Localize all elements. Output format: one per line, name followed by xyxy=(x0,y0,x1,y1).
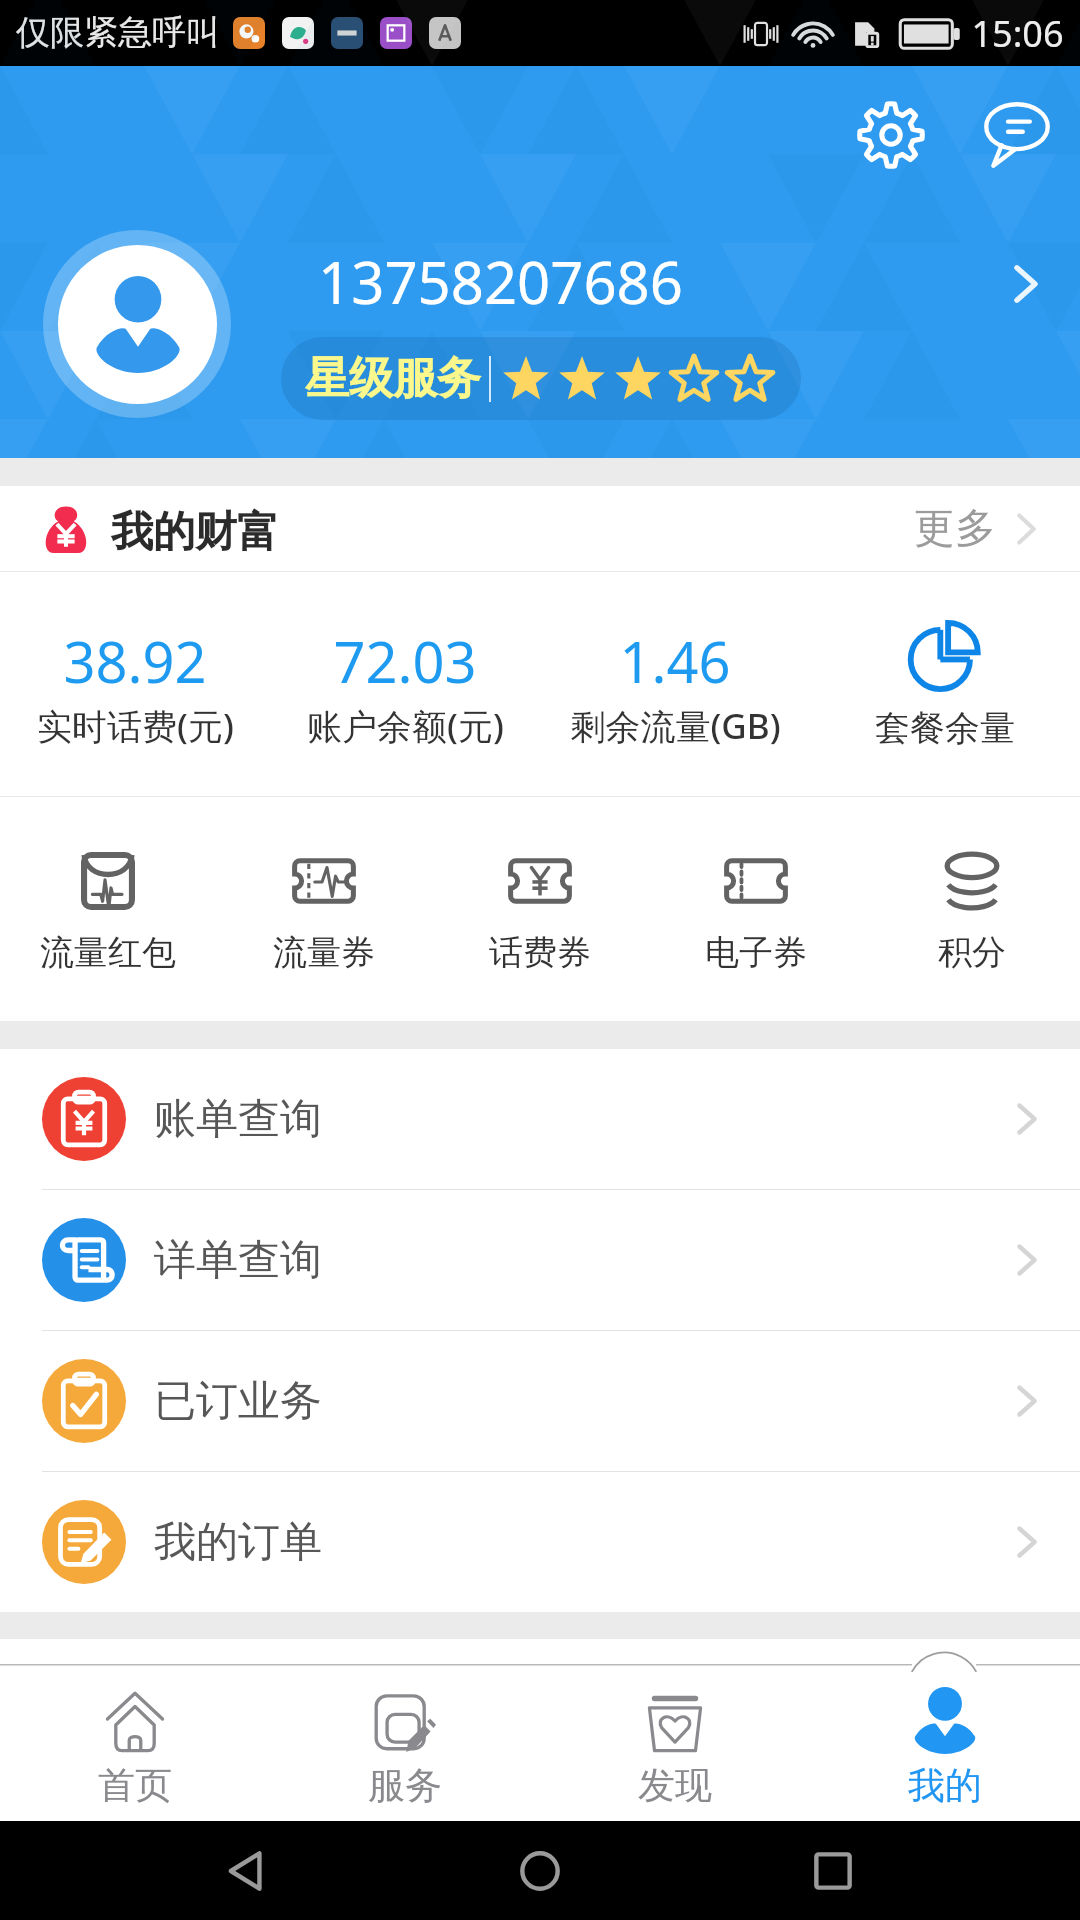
button[interactable]: 电子券 xyxy=(648,797,864,1021)
button[interactable]: 38.92 xyxy=(0,572,270,796)
staticText: 详单查询 xyxy=(154,1234,322,1287)
staticText: 套餐余量 xyxy=(875,706,1015,750)
button[interactable]: 我的财富 xyxy=(0,486,1080,571)
button[interactable]: Home xyxy=(495,1826,585,1916)
staticText: 剩余流量(GB) xyxy=(570,702,781,750)
button[interactable]: 发现 xyxy=(540,1664,810,1821)
button[interactable]: 积分 xyxy=(864,797,1080,1021)
button[interactable]: 1.46 xyxy=(540,572,810,796)
button[interactable]: 详单查询 xyxy=(0,1190,1080,1330)
button[interactable]: Settings xyxy=(836,80,946,190)
staticText: 账户余额(元) xyxy=(307,702,504,750)
staticText: 星级服务 xyxy=(305,351,481,406)
button[interactable]: 我的订单 xyxy=(0,1472,1080,1612)
staticText: 首页 xyxy=(98,1762,172,1809)
staticText: 更多 xyxy=(914,503,996,555)
button[interactable]: 话费券 xyxy=(432,797,648,1021)
staticText: 流量券 xyxy=(273,931,375,974)
staticText: 话费券 xyxy=(489,931,591,974)
staticText: 15:06 xyxy=(971,9,1064,58)
staticText: 我的财富 xyxy=(111,506,279,559)
staticText: 流量红包 xyxy=(40,931,176,974)
button[interactable]: 套餐余量 xyxy=(810,572,1080,796)
staticText: 72.03 xyxy=(333,623,477,699)
button[interactable]: 已订业务 xyxy=(0,1331,1080,1471)
staticText: 服务 xyxy=(368,1762,442,1809)
button[interactable]: 服务 xyxy=(270,1664,540,1821)
button[interactable]: 我的 xyxy=(810,1664,1080,1821)
staticText: 发现 xyxy=(638,1762,712,1809)
staticText: 电子券 xyxy=(705,931,807,974)
staticText: 38.92 xyxy=(63,623,207,699)
button[interactable]: Back xyxy=(203,1826,293,1916)
staticText: 积分 xyxy=(938,931,1006,974)
button[interactable]: 流量红包 xyxy=(0,797,216,1021)
button[interactable]: 账单查询 xyxy=(0,1049,1080,1189)
button[interactable]: 13758207686 xyxy=(0,230,1080,460)
staticText: 已订业务 xyxy=(154,1375,322,1428)
button[interactable]: Recents xyxy=(788,1826,878,1916)
staticText: 仅限紧急呼叫 xyxy=(16,11,220,54)
staticText: 账单查询 xyxy=(154,1093,322,1146)
staticText: 我的订单 xyxy=(154,1516,322,1569)
staticText: 实时话费(元) xyxy=(37,702,234,750)
staticText: 13758207686 xyxy=(318,242,683,321)
button[interactable]: 流量券 xyxy=(216,797,432,1021)
button[interactable]: 首页 xyxy=(0,1664,270,1821)
button[interactable]: Messages xyxy=(962,80,1072,190)
staticText: 1.46 xyxy=(619,623,731,699)
button[interactable]: 72.03 xyxy=(270,572,540,796)
staticText: 我的 xyxy=(908,1762,982,1809)
